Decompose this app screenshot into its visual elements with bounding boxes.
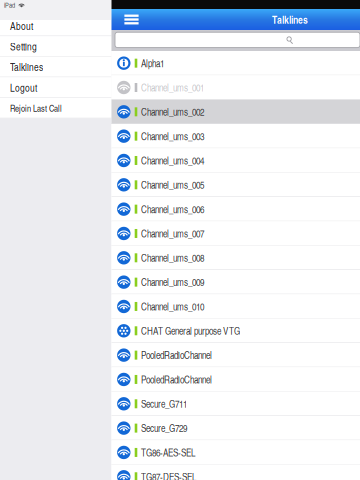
staticText: CHAT General purpose VTG bbox=[141, 324, 240, 337]
button[interactable]: Logout bbox=[0, 77, 111, 98]
staticText: iPad bbox=[4, 0, 15, 10]
button[interactable]: Talklines bbox=[0, 57, 111, 77]
staticText: Talklines bbox=[272, 12, 308, 27]
button[interactable]: CHAT General purpose VTG bbox=[111, 319, 360, 343]
button[interactable]: Channel_ums_009 bbox=[111, 270, 360, 294]
button[interactable]: Channel_ums_005 bbox=[111, 173, 360, 197]
button[interactable]: Secure_G729 bbox=[111, 416, 360, 440]
staticText: Channel_ums_002 bbox=[141, 105, 204, 119]
button[interactable]: Alpha1 bbox=[111, 51, 360, 75]
button[interactable]: Channel_ums_006 bbox=[111, 197, 360, 221]
button[interactable]: Secure_G711 bbox=[111, 392, 360, 416]
button[interactable]: Channel_ums_007 bbox=[111, 221, 360, 246]
button[interactable]: Channel_ums_004 bbox=[111, 148, 360, 173]
staticText: Logout bbox=[10, 80, 37, 95]
staticText: Secure_G711 bbox=[141, 397, 187, 410]
staticText: Channel_ums_005 bbox=[141, 178, 204, 192]
staticText: PooledRadioChannel bbox=[141, 373, 212, 386]
staticText: PooledRadioChannel bbox=[141, 348, 212, 362]
button[interactable]: Channel_ums_003 bbox=[111, 124, 360, 148]
staticText: Channel_ums_003 bbox=[141, 129, 204, 143]
button[interactable]: Channel_ums_008 bbox=[111, 246, 360, 270]
button[interactable]: Setting bbox=[0, 36, 111, 57]
staticText: Channel_ums_008 bbox=[141, 251, 204, 264]
button[interactable]: PooledRadioChannel bbox=[111, 367, 360, 392]
staticText: Alpha1 bbox=[141, 56, 164, 70]
button[interactable]: PooledRadioChannel bbox=[111, 343, 360, 367]
button[interactable]: About bbox=[0, 16, 111, 36]
staticText: Secure_G729 bbox=[141, 421, 187, 435]
button[interactable]: Channel_ums_001 bbox=[111, 75, 360, 100]
staticText: About bbox=[10, 19, 33, 33]
button[interactable]: Menu bbox=[119, 9, 143, 30]
staticText: Channel_ums_007 bbox=[141, 227, 204, 240]
staticText: Channel_ums_006 bbox=[141, 202, 204, 216]
staticText: Setting bbox=[10, 39, 37, 53]
staticText: Channel_ums_010 bbox=[141, 300, 204, 313]
button[interactable]: TG87-DES-SEL bbox=[111, 465, 360, 480]
staticText: TG87-DES-SEL bbox=[141, 470, 196, 480]
button[interactable]: Channel_ums_010 bbox=[111, 294, 360, 319]
staticText: Channel_ums_009 bbox=[141, 275, 204, 289]
staticText: Channel_ums_004 bbox=[141, 154, 204, 167]
staticText: Rejoin Last Call bbox=[10, 102, 62, 114]
staticText: Talklines bbox=[10, 60, 43, 74]
button[interactable]: Rejoin Last Call bbox=[0, 98, 111, 118]
staticText: TG86-AES-SEL bbox=[141, 446, 195, 459]
button[interactable]: TG86-AES-SEL bbox=[111, 440, 360, 465]
button[interactable]: Channel_ums_002 bbox=[111, 100, 360, 124]
staticText: Channel_ums_001 bbox=[141, 81, 204, 94]
